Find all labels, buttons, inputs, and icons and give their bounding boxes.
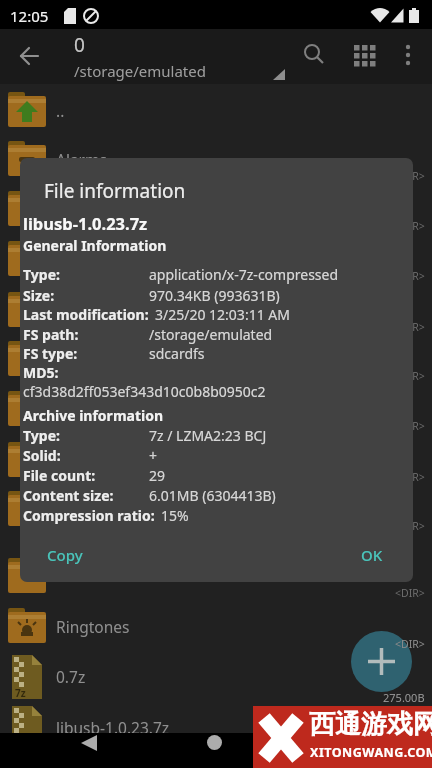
staticText: File count:: [23, 466, 96, 485]
staticText: application/x-7z-compressed: [149, 265, 339, 284]
button[interactable]: Ringtones: [0, 601, 432, 651]
button[interactable]: <DIR>: [0, 484, 432, 534]
button[interactable]: <DIR>: [0, 551, 432, 601]
staticText: Alarms: [56, 149, 107, 170]
staticText: <DIR>: [395, 419, 425, 433]
button[interactable]: 7z: [0, 702, 432, 752]
staticText: Size:: [23, 286, 55, 305]
staticText: <DIR>: [395, 269, 425, 283]
button[interactable]: [12, 40, 46, 74]
staticText: sdcardfs: [149, 344, 205, 363]
staticText: <DIR>: [395, 586, 425, 600]
staticText: <DIR>: [395, 320, 425, 334]
button[interactable]: <DIR>: [0, 435, 432, 485]
button[interactable]: OK: [350, 540, 394, 570]
staticText: <DIR>: [395, 519, 425, 533]
button[interactable]: <DIR>: [0, 285, 432, 335]
button[interactable]: 7z: [0, 651, 432, 701]
staticText: 970.34KB (993631B): [149, 286, 280, 305]
button[interactable]: <DIR>: [0, 384, 432, 434]
staticText: General Information: [23, 236, 167, 255]
staticText: libusb-1.0.23.7z: [56, 717, 170, 738]
staticText: MD5:: [23, 363, 59, 382]
staticText: 西通游戏网: [309, 708, 432, 741]
button[interactable]: [351, 631, 412, 692]
staticText: <DIR>: [395, 169, 425, 183]
button[interactable]: <DIR>: [0, 184, 432, 234]
staticText: <DIR>: [395, 637, 425, 651]
staticText: Content size:: [23, 486, 114, 505]
button[interactable]: Copy: [34, 540, 96, 570]
staticText: Ringtones: [56, 616, 130, 637]
staticText: Last modification:: [23, 305, 149, 324]
staticText: OK: [361, 545, 383, 565]
staticText: Copy: [47, 545, 83, 565]
staticText: 7z: [15, 686, 26, 700]
staticText: FS type:: [23, 344, 78, 363]
staticText: Solid:: [23, 446, 61, 465]
staticText: <DIR>: [395, 470, 425, 484]
staticText: XITONGWANG.COM: [310, 744, 432, 761]
staticText: Compression ratio:: [23, 506, 155, 525]
staticText: 29: [149, 466, 166, 485]
staticText: Type:: [23, 426, 60, 445]
staticText: 6.01MB (6304413B): [149, 486, 276, 505]
staticText: /storage/emulated: [74, 61, 206, 81]
button[interactable]: [396, 40, 420, 64]
staticText: <DIR>: [395, 369, 425, 383]
button[interactable]: [192, 733, 236, 768]
staticText: libusb-1.0.23.7z: [23, 212, 148, 234]
staticText: FS path:: [23, 325, 79, 344]
staticText: +: [149, 446, 158, 465]
staticText: Type:: [23, 265, 60, 284]
staticText: Archive information: [23, 406, 164, 425]
staticText: <DIR>: [395, 219, 425, 233]
staticText: /storage/emulated: [149, 325, 273, 344]
button[interactable]: <DIR>: [0, 334, 432, 384]
button[interactable]: [298, 40, 326, 68]
staticText: File information: [44, 178, 186, 204]
button[interactable]: <DIR>: [0, 234, 432, 284]
staticText: 12:05: [10, 6, 49, 26]
staticText: 0: [74, 32, 85, 58]
staticText: 15%: [161, 506, 189, 525]
staticText: cf3d38d2ff053ef343d10c0b8b0950c2: [23, 382, 266, 401]
staticText: 0.7z: [56, 666, 86, 687]
staticText: 3/25/20 12:03:11 AM: [155, 305, 290, 324]
staticText: ..: [56, 100, 65, 121]
button[interactable]: [75, 733, 119, 768]
staticText: 275.00B: [383, 690, 425, 705]
button[interactable]: [350, 40, 378, 68]
button[interactable]: ..: [0, 85, 432, 135]
button[interactable]: /storage/emulated: [74, 61, 206, 81]
staticText: 7z / LZMA2:23 BCJ: [149, 426, 267, 445]
button[interactable]: Alarms: [0, 134, 432, 184]
